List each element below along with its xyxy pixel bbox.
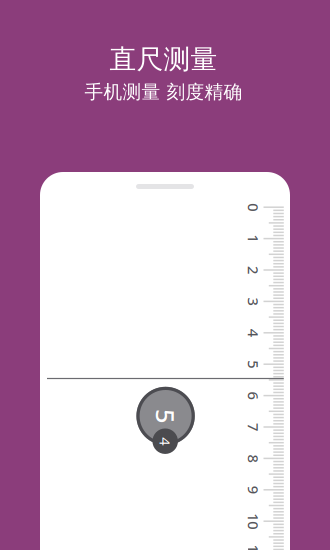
staticText: 直尺测量 (109, 43, 217, 76)
button[interactable]: 毫米刻度 4 (150, 426, 180, 456)
staticText: 4 (161, 431, 169, 451)
staticText: 6 (249, 386, 257, 405)
staticText: 4 (249, 323, 257, 343)
staticText: 11 (245, 543, 261, 550)
staticText: 7 (249, 417, 257, 437)
staticText: 3 (249, 292, 257, 311)
staticText: 9 (249, 480, 257, 500)
staticText: 5 (249, 354, 257, 374)
staticText: 5 (159, 399, 173, 433)
staticText: 1 (249, 229, 257, 248)
button[interactable]: 测量滑块 5 厘米 (134, 385, 197, 447)
staticText: 8 (249, 449, 257, 468)
staticText: 2 (249, 260, 257, 280)
staticText: 0 (249, 197, 257, 217)
staticText: 手机测量 刻度精确 (84, 80, 242, 103)
staticText: 10 (245, 511, 261, 531)
